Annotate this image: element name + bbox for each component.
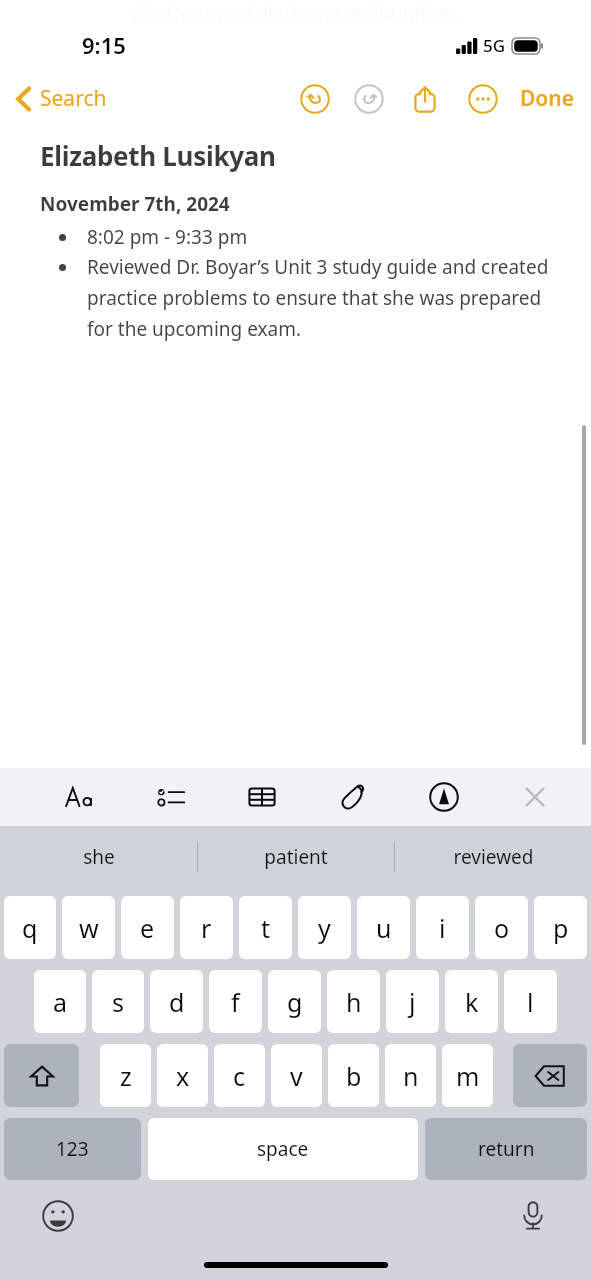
button[interactable]: r [180,896,233,959]
button[interactable]: More [466,82,500,116]
staticText: Done [520,84,575,113]
button[interactable]: g [268,970,321,1033]
button[interactable]: a [34,970,86,1033]
staticText: y [318,911,331,945]
staticText: space [257,1136,309,1162]
button[interactable]: Share [408,82,442,116]
button[interactable]: f [209,970,262,1033]
button[interactable]: Done [512,78,583,119]
staticText: November 7th, 2024 [40,191,230,217]
button[interactable]: Table [240,775,284,819]
button[interactable]: k [445,970,498,1033]
button[interactable]: x [157,1044,208,1107]
button[interactable]: Dictation [511,1194,555,1238]
staticText: t [261,911,271,945]
staticText: c [233,1059,246,1093]
staticText: reviewed [453,844,534,870]
button[interactable]: Checklist [149,775,193,819]
button[interactable]: space [148,1118,418,1180]
button[interactable]: c [214,1044,265,1107]
button[interactable]: p [534,896,587,959]
button[interactable]: u [357,896,410,959]
button[interactable]: o [475,896,528,959]
button[interactable]: w [62,896,115,959]
button[interactable]: Emoji [36,1194,80,1238]
staticText: h [346,985,362,1019]
staticText: g [287,985,303,1019]
staticText: w [79,911,99,945]
staticText: x [176,1059,190,1093]
staticText: d [169,985,185,1019]
staticText: z [120,1059,132,1093]
button[interactable]: z [100,1044,151,1107]
staticText: k [465,985,479,1019]
button[interactable]: n [385,1044,436,1107]
button[interactable]: Redo [352,82,386,116]
staticText: a [53,985,68,1019]
staticText: e [140,911,155,945]
staticText: n [403,1059,419,1093]
button[interactable]: Undo [298,82,332,116]
staticText: 8:02 pm - 9:33 pm [87,224,248,250]
button[interactable]: v [271,1044,322,1107]
button[interactable]: patient [198,826,394,888]
staticText: Elizabeth Lusikyan [40,138,276,173]
staticText: return [478,1136,535,1162]
staticText: Search [40,84,107,113]
staticText: i [439,911,446,945]
staticText: m [456,1059,480,1093]
staticText: o [494,911,510,945]
button[interactable]: Text format [58,775,102,819]
button[interactable]: Close keyboard [513,775,557,819]
staticText: Reviewed Dr. Boyar’s Unit 3 study guide … [87,254,563,342]
button[interactable]: t [239,896,292,959]
button[interactable]: return [425,1118,587,1180]
staticText: b [346,1059,362,1093]
staticText: r [201,911,212,945]
staticText: 5G [483,34,506,57]
staticText: s [112,985,124,1019]
button[interactable]: j [386,970,439,1033]
staticText: 9:15 [82,30,126,60]
staticText: patient [264,844,328,870]
button[interactable]: Delete [513,1044,587,1107]
button[interactable]: h [327,970,380,1033]
button[interactable]: q [4,896,56,959]
staticText: she [83,844,115,870]
button[interactable]: y [298,896,351,959]
staticText: f [231,985,240,1019]
button[interactable]: l [504,970,557,1033]
button[interactable]: b [328,1044,379,1107]
button[interactable]: 123 [4,1118,141,1180]
staticText: 123 [56,1136,89,1162]
button[interactable]: i [416,896,469,959]
staticText: j [409,985,416,1019]
button[interactable]: Shift [4,1044,79,1107]
staticText: q [22,911,38,945]
staticText: p [553,911,569,945]
button[interactable]: Attach [331,775,375,819]
button[interactable]: m [442,1044,493,1107]
staticText: v [290,1059,303,1093]
button[interactable]: Markup [422,775,466,819]
button[interactable]: s [92,970,144,1033]
button[interactable]: e [121,896,174,959]
staticText: u [376,911,392,945]
button[interactable]: d [150,970,203,1033]
button[interactable]: reviewed [395,826,591,888]
button[interactable]: she [0,826,197,888]
staticText: l [527,985,534,1019]
button[interactable]: Search [12,78,111,119]
